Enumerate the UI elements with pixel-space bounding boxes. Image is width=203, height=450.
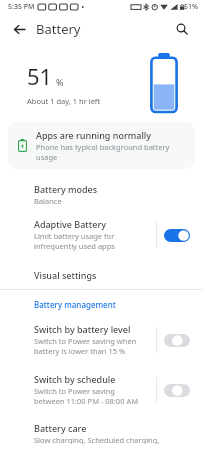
button[interactable]: Battery modes: [0, 177, 203, 212]
button[interactable]: Apps are running normally: [8, 122, 195, 169]
button[interactable]: Adaptive Battery: [0, 212, 203, 257]
staticText: Slow charging, Scheduled charging, Charg…: [34, 435, 189, 444]
staticText: %: [56, 76, 64, 88]
staticText: Switch to Power saving when battery is l…: [34, 336, 145, 356]
button[interactable]: Back: [6, 16, 32, 42]
staticText: Balance: [34, 196, 62, 206]
staticText: 5:35 PM: [8, 2, 35, 12]
staticText: Battery: [36, 20, 81, 38]
button[interactable]: Search: [169, 16, 195, 42]
button[interactable]: Switch by battery level: [164, 333, 190, 348]
staticText: 51%: [184, 2, 198, 12]
button[interactable]: Switch by schedule: [0, 368, 203, 411]
staticText: Adaptive Battery: [34, 218, 106, 230]
button[interactable]: Adaptive Battery: [164, 228, 190, 243]
staticText: Apps are running normally: [36, 129, 152, 141]
staticText: Battery management: [34, 299, 116, 310]
button[interactable]: Switch by schedule: [164, 383, 190, 398]
staticText: Battery care: [34, 422, 87, 434]
staticText: Battery modes: [34, 183, 98, 195]
staticText: Limit battery usage for infrequently use…: [34, 231, 145, 251]
button[interactable]: Switch by battery level: [0, 318, 203, 361]
button[interactable]: Battery care: [0, 418, 203, 450]
staticText: Switch to Power saving between 11:00 PM …: [34, 386, 145, 406]
staticText: Switch by battery level: [34, 323, 131, 335]
staticText: Switch by schedule: [34, 373, 116, 385]
staticText: Visual settings: [34, 269, 97, 281]
staticText: Phone has typical background battery usa…: [36, 142, 187, 162]
staticText: About 1 day, 1 hr left: [27, 96, 101, 106]
button[interactable]: Visual settings: [0, 263, 203, 289]
staticText: 51: [27, 61, 53, 91]
